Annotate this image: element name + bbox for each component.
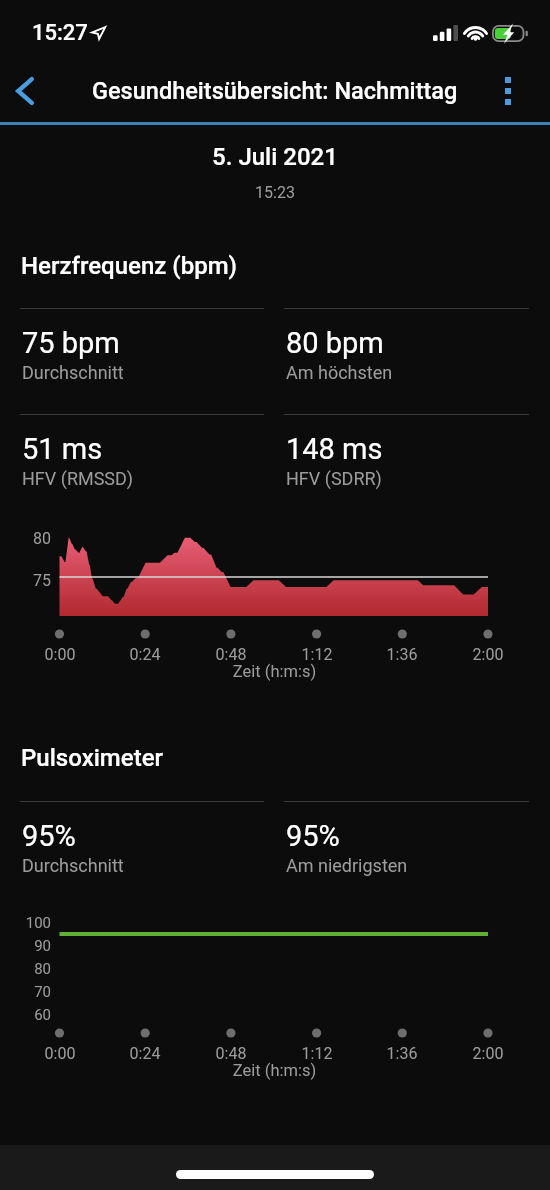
staticText: 70 xyxy=(14,983,51,1001)
button[interactable]: 95% xyxy=(284,801,529,857)
staticText: 15:27 xyxy=(32,20,88,46)
button[interactable]: 75 bpm xyxy=(20,308,264,364)
staticText: Am höchsten xyxy=(286,362,393,383)
staticText: 2:00 xyxy=(463,645,513,664)
staticText: 80 xyxy=(21,529,51,548)
staticText: 0:24 xyxy=(120,645,170,664)
staticText: 75 bpm xyxy=(22,326,120,360)
staticText: Zeit (h:m:s) xyxy=(35,1061,514,1080)
staticText: 1:36 xyxy=(377,645,427,664)
staticText: 60 xyxy=(14,1006,51,1024)
staticText: 90 xyxy=(14,937,51,955)
staticText: 15:23 xyxy=(0,183,550,202)
button[interactable]: 95% xyxy=(20,801,264,857)
staticText: 95% xyxy=(286,819,340,853)
staticText: 0:48 xyxy=(206,1044,256,1063)
staticText: 95% xyxy=(22,819,76,853)
staticText: 2:00 xyxy=(463,1044,513,1063)
staticText: 0:48 xyxy=(206,645,256,664)
staticText: 0:00 xyxy=(35,645,85,664)
button[interactable]: 51 ms xyxy=(20,414,264,470)
staticText: 75 xyxy=(21,571,51,590)
staticText: HFV (RMSSD) xyxy=(22,468,134,489)
staticText: 0:24 xyxy=(120,1044,170,1063)
staticText: 1:12 xyxy=(292,645,342,664)
staticText: 80 bpm xyxy=(286,326,384,360)
button[interactable]: More options xyxy=(488,60,528,122)
staticText: 1:12 xyxy=(292,1044,342,1063)
button[interactable]: 80 bpm xyxy=(284,308,529,364)
staticText: 100 xyxy=(14,914,51,932)
staticText: 5. Juli 2021 xyxy=(0,143,550,171)
staticText: 148 ms xyxy=(286,432,383,466)
staticText: Durchschnitt xyxy=(22,855,124,876)
staticText: 51 ms xyxy=(22,432,103,466)
staticText: 0:00 xyxy=(35,1044,85,1063)
staticText: Herzfrequenz (bpm) xyxy=(21,252,238,280)
staticText: 1:36 xyxy=(377,1044,427,1063)
staticText: HFV (SDRR) xyxy=(286,468,382,489)
staticText: Am niedrigsten xyxy=(286,855,408,876)
button[interactable]: 148 ms xyxy=(284,414,529,470)
staticText: Durchschnitt xyxy=(22,362,124,383)
staticText: Zeit (h:m:s) xyxy=(35,662,514,681)
staticText: Pulsoximeter xyxy=(21,744,163,772)
staticText: 80 xyxy=(14,960,51,978)
staticText: Gesundheitsübersicht: Nachmittag xyxy=(92,77,458,105)
button[interactable]: Back xyxy=(0,60,50,122)
